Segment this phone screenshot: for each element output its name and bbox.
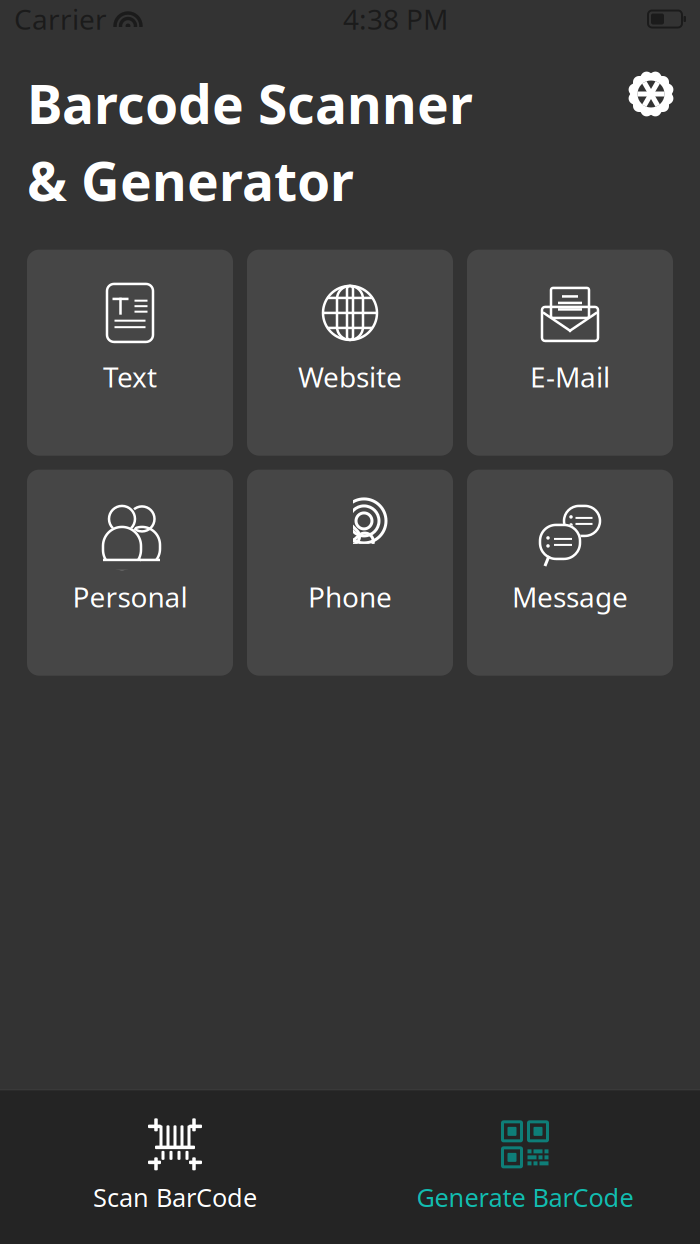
- staticText: Scan BarCode: [93, 1180, 257, 1214]
- staticText: Barcode Scanner: [27, 68, 473, 139]
- staticText: Personal: [72, 578, 187, 615]
- staticText: Message: [512, 578, 628, 615]
- staticText: Carrier: [14, 0, 107, 38]
- button[interactable]: Website: [247, 250, 453, 456]
- staticText: Text: [103, 358, 157, 395]
- button[interactable]: Settings: [629, 68, 673, 116]
- staticText: Website: [298, 358, 402, 395]
- button[interactable]: Scan BarCode: [0, 1090, 350, 1244]
- button[interactable]: Personal: [27, 470, 233, 676]
- button[interactable]: Message: [467, 470, 673, 676]
- staticText: Phone: [308, 578, 392, 615]
- staticText: & Generator: [27, 145, 354, 216]
- staticText: Generate BarCode: [416, 1180, 633, 1214]
- staticText: 4:38 PM: [343, 0, 448, 38]
- button[interactable]: E-Mail: [467, 250, 673, 456]
- staticText: E-Mail: [530, 358, 610, 395]
- button[interactable]: Phone: [247, 470, 453, 676]
- button[interactable]: Text: [27, 250, 233, 456]
- button[interactable]: Generate BarCode: [350, 1090, 700, 1244]
